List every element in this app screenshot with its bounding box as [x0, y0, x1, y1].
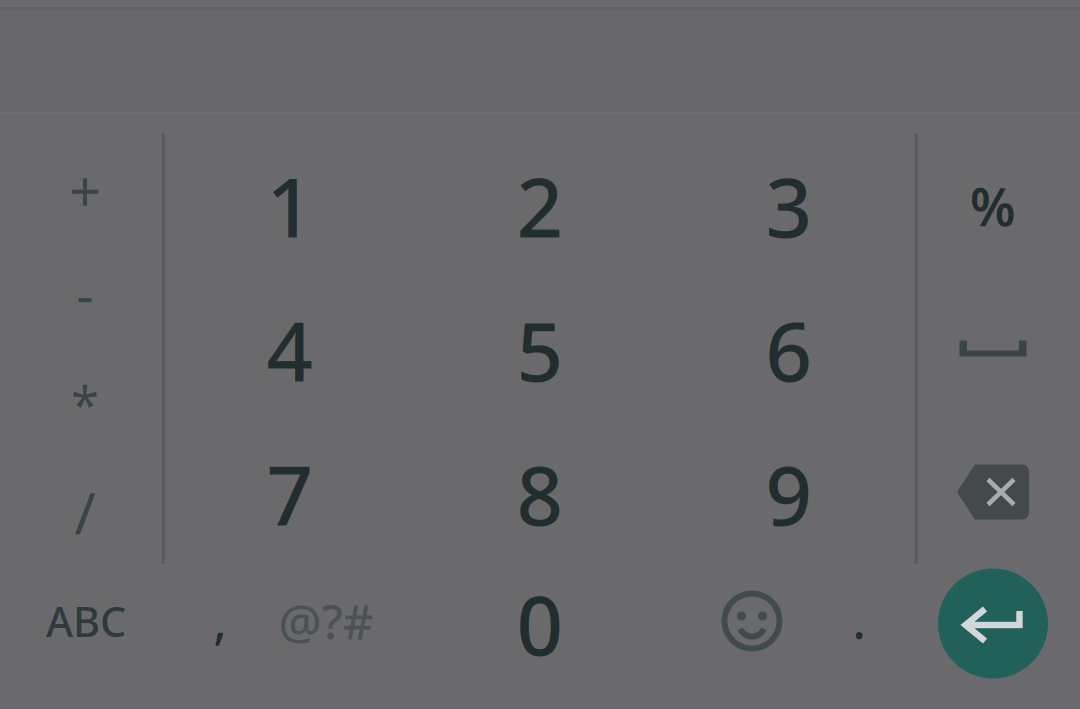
button[interactable]: -	[3, 277, 166, 421]
staticText: 4	[266, 296, 313, 404]
button[interactable]: 8	[414, 421, 665, 565]
staticText: @?#	[278, 589, 373, 653]
staticText: *	[71, 370, 99, 438]
staticText: 0	[516, 570, 563, 678]
button[interactable]: 7	[164, 421, 415, 565]
button[interactable]: 2	[414, 133, 665, 277]
button[interactable]: Space	[911, 277, 1075, 421]
staticText: %	[970, 171, 1016, 241]
staticText: ,	[213, 583, 227, 653]
button[interactable]: 9	[663, 421, 914, 565]
staticText: +	[69, 153, 101, 227]
button[interactable]: Emoji	[687, 565, 817, 709]
button[interactable]: /	[3, 565, 166, 709]
button[interactable]: 5	[414, 277, 665, 421]
button[interactable]: @?#	[276, 565, 376, 709]
staticText: 8	[516, 440, 563, 548]
staticText: 1	[266, 152, 313, 260]
button[interactable]: Enter	[911, 565, 1075, 709]
staticText: 5	[516, 296, 563, 404]
button[interactable]: ,	[164, 565, 276, 709]
button[interactable]: %	[911, 133, 1075, 277]
staticText: 6	[765, 296, 812, 404]
button[interactable]: 6	[663, 277, 914, 421]
staticText: .	[852, 583, 866, 653]
button[interactable]: 4	[164, 277, 415, 421]
staticText: /	[74, 474, 95, 550]
staticText: 9	[765, 440, 812, 548]
button[interactable]: .	[817, 565, 901, 709]
button[interactable]: Delete	[911, 421, 1075, 565]
button[interactable]: 1	[164, 133, 415, 277]
staticText: ABC	[46, 594, 126, 648]
staticText: 7	[266, 440, 313, 548]
button[interactable]: 0	[414, 565, 665, 709]
button[interactable]: +	[3, 133, 166, 277]
staticText: 3	[765, 152, 812, 260]
button[interactable]: ABC	[3, 565, 166, 709]
button[interactable]: *	[3, 421, 166, 565]
staticText: -	[76, 258, 93, 329]
button[interactable]: 3	[663, 133, 914, 277]
staticText: 2	[516, 152, 563, 260]
